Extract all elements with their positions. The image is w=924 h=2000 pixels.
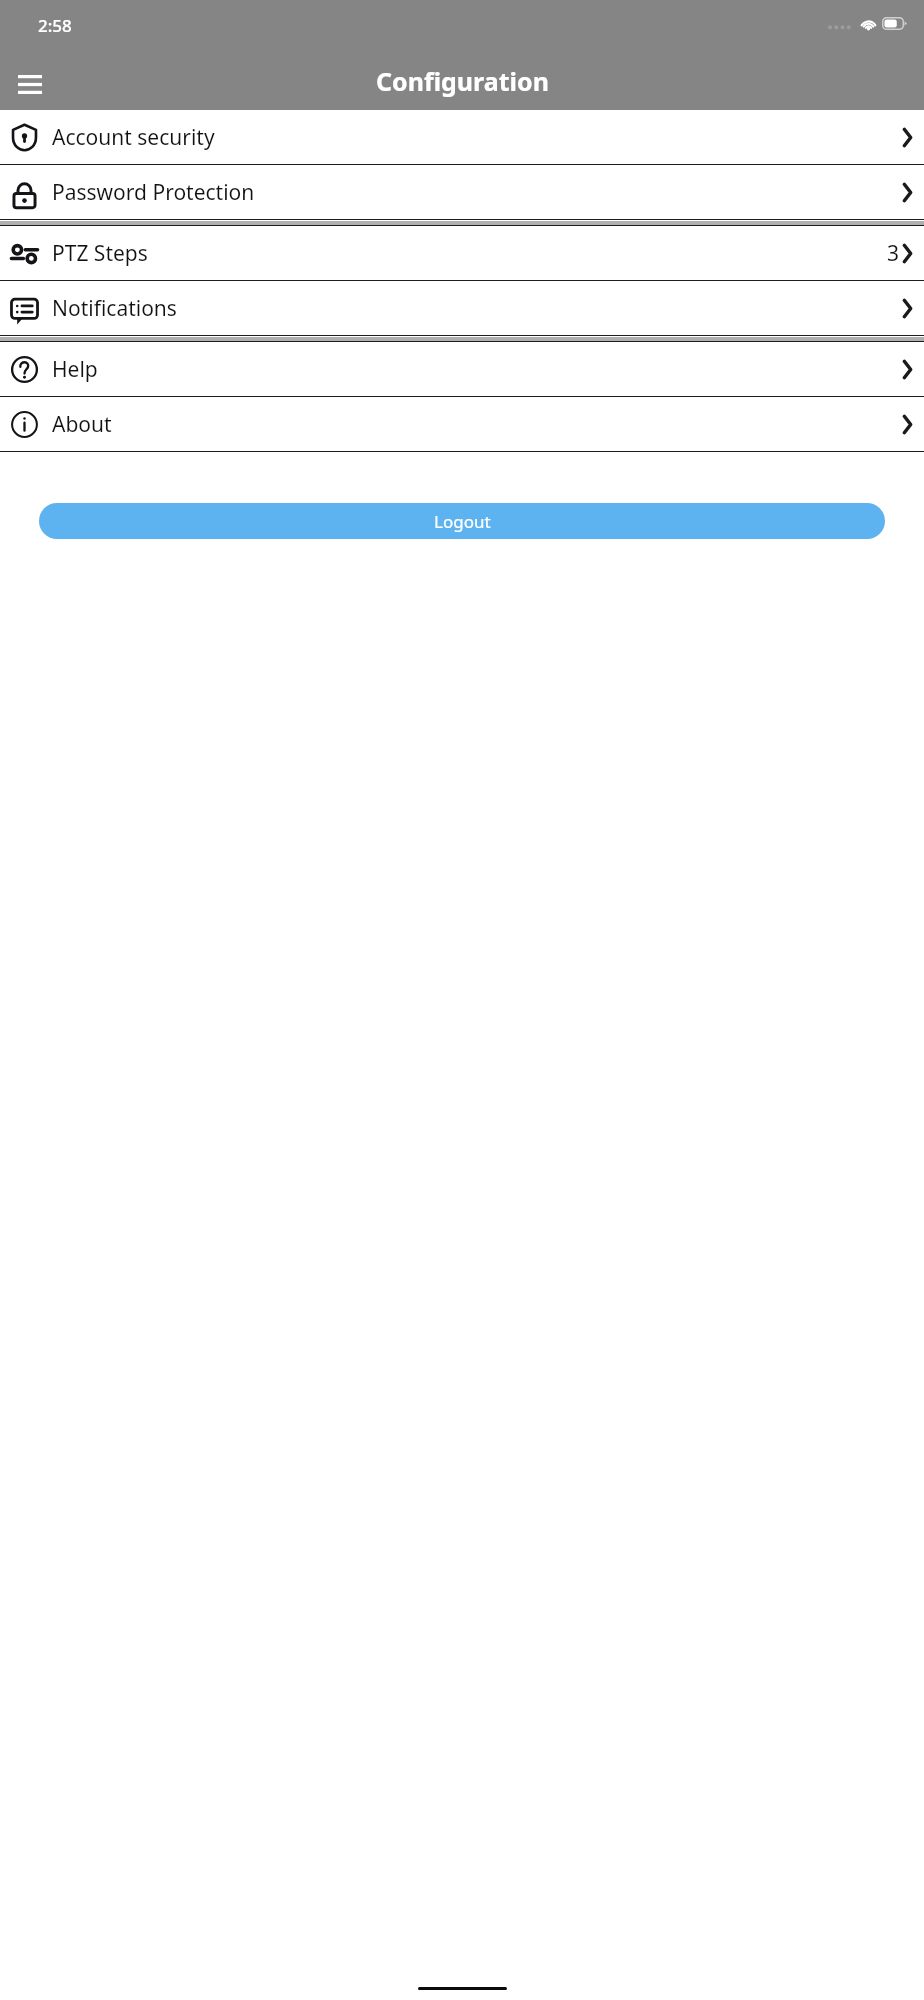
staticText: 3	[887, 239, 900, 268]
button[interactable]: Help	[0, 342, 924, 396]
staticText: Logout	[434, 510, 491, 533]
button[interactable]: PTZ Steps	[0, 226, 924, 280]
button[interactable]: Logout	[39, 503, 885, 539]
staticText: PTZ Steps	[52, 239, 148, 268]
staticText: About	[52, 410, 112, 439]
button[interactable]: About	[0, 397, 924, 451]
staticText: Help	[52, 355, 98, 384]
staticText: Account security	[52, 123, 215, 152]
staticText: 2:58	[38, 14, 72, 37]
staticText: Configuration	[376, 64, 549, 98]
button[interactable]: Notifications	[0, 281, 924, 335]
staticText: Password Protection	[52, 178, 255, 207]
button[interactable]: Open navigation menu	[8, 62, 52, 106]
button[interactable]: Account security	[0, 110, 924, 164]
staticText: Notifications	[52, 294, 177, 323]
button[interactable]: Password Protection	[0, 165, 924, 219]
